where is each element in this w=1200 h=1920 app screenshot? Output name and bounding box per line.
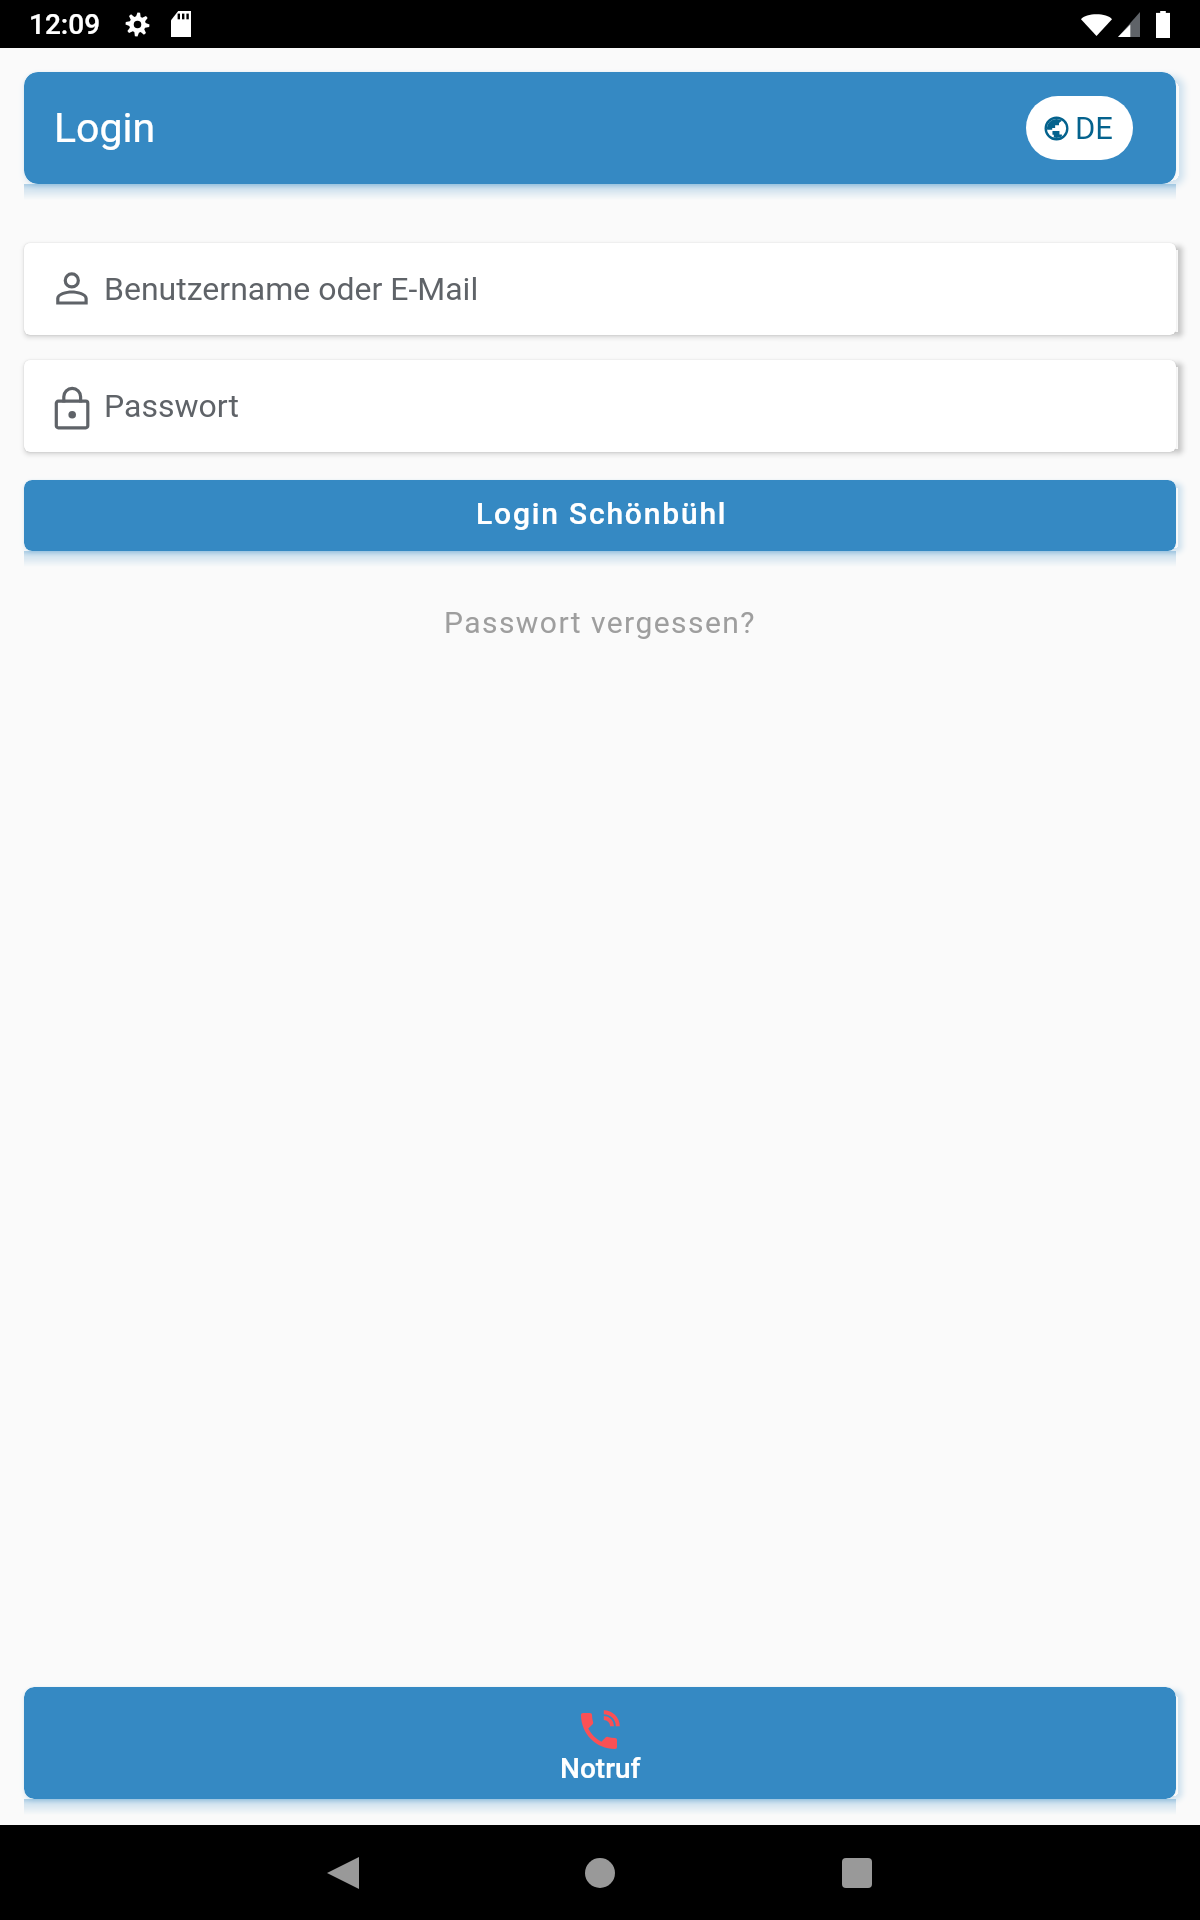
staticText: Benutzername oder E-Mail <box>104 270 479 308</box>
button[interactable]: Sprache wählen: DE <box>1026 96 1133 160</box>
button[interactable]: Passwort vergessen? <box>0 597 1200 648</box>
button[interactable]: Benutzername oder E-Mail <box>24 243 1176 335</box>
button[interactable]: Back <box>306 1836 380 1910</box>
button[interactable]: Notruf <box>24 1687 1176 1799</box>
button[interactable]: Home <box>563 1836 637 1910</box>
staticText: Passwort vergessen? <box>444 605 756 640</box>
button[interactable]: Passwort <box>24 360 1176 452</box>
staticText: DE <box>1075 110 1113 146</box>
staticText: Passwort <box>104 387 239 425</box>
staticText: Login Schönbühl <box>476 496 728 531</box>
button[interactable]: Login <box>24 72 1176 184</box>
button[interactable]: Recents <box>820 1836 894 1910</box>
staticText: Login <box>54 104 156 152</box>
button[interactable]: Login Schönbühl <box>24 480 1176 551</box>
staticText: 12:09 <box>29 8 101 41</box>
staticText: Notruf <box>560 1752 641 1785</box>
